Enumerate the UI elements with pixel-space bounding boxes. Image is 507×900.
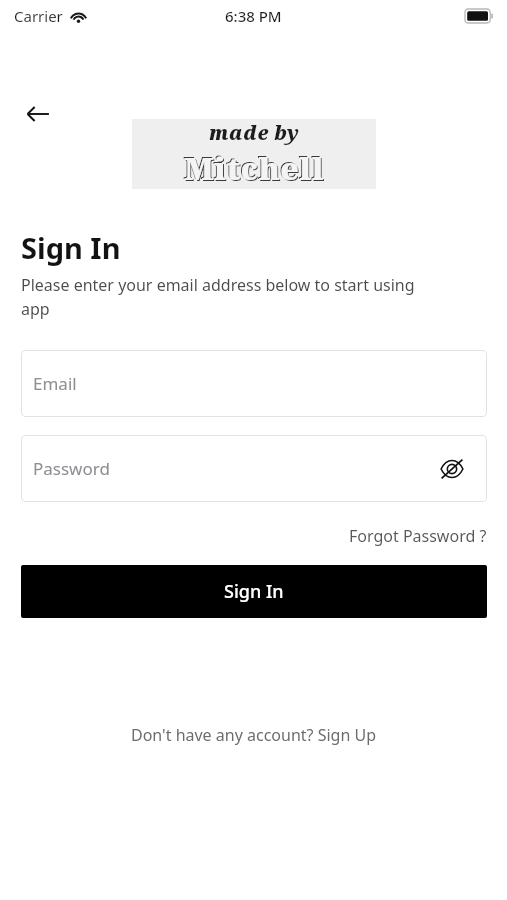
- button[interactable]: Forgot Password ?: [320, 521, 487, 551]
- staticText: Forgot Password ?: [349, 525, 487, 547]
- staticText: Mitchell: [185, 148, 326, 190]
- button[interactable]: Sign In: [21, 565, 487, 618]
- staticText: made by: [209, 120, 300, 146]
- button[interactable]: Don't have any account? Sign Up: [0, 720, 507, 750]
- staticText: Mitchell: [183, 146, 324, 188]
- staticText: Sign In: [224, 579, 284, 604]
- staticText: Please enter your email address below to…: [21, 274, 421, 320]
- staticText: Carrier: [14, 6, 63, 26]
- staticText: Mitchell: [184, 147, 325, 189]
- button[interactable]: Back: [18, 94, 58, 134]
- button[interactable]: Email: [21, 350, 487, 417]
- staticText: Don't have any account? Sign Up: [131, 724, 376, 746]
- button[interactable]: Show password: [435, 452, 469, 486]
- button[interactable]: Password: [21, 435, 487, 502]
- staticText: Password: [33, 457, 110, 480]
- staticText: Email: [33, 372, 77, 395]
- staticText: 6:38 PM: [225, 6, 282, 26]
- staticText: Sign In: [21, 228, 121, 267]
